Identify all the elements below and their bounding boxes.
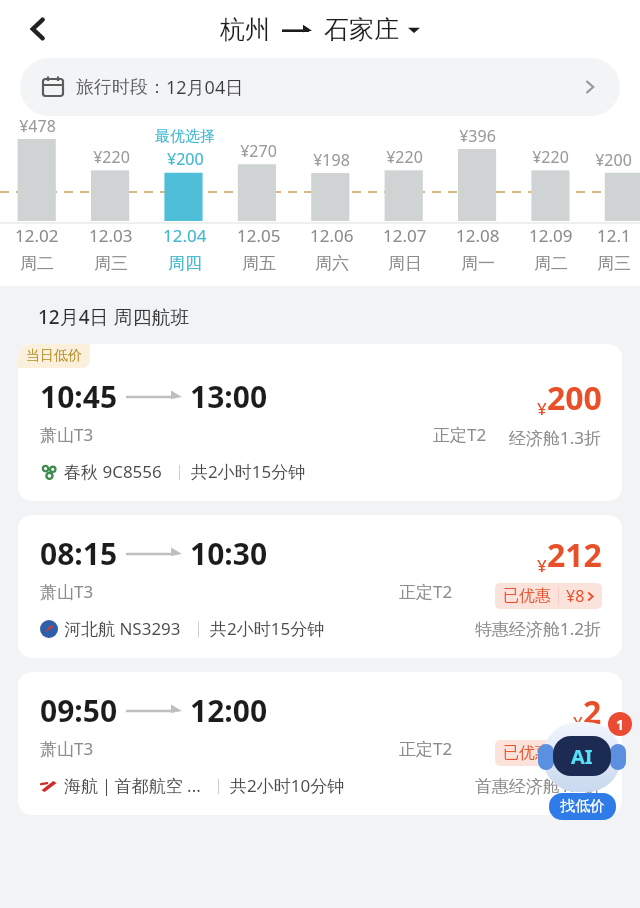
staticText: 经济舱1.3折	[509, 426, 602, 449]
staticText: 12.02	[15, 224, 59, 247]
staticText: 2	[583, 690, 602, 734]
staticText: 杭州	[220, 14, 270, 45]
staticText: ¥396	[459, 125, 496, 147]
staticText: ¥	[537, 397, 547, 420]
staticText: ¥	[537, 554, 547, 577]
staticText: 首惠经济舱1.7折	[475, 774, 602, 797]
staticText: 萧山T3	[40, 423, 94, 446]
staticText: 共2小时15分钟	[191, 460, 306, 483]
staticText: ¥478	[19, 115, 56, 137]
staticText: 萧山T3	[40, 737, 94, 760]
staticText: 200	[547, 376, 602, 420]
staticText: 特惠经济舱1.2折	[475, 617, 602, 640]
button[interactable]: 08:15	[18, 515, 622, 658]
staticText: 12.04	[163, 224, 207, 247]
staticText: 12.03	[89, 224, 133, 247]
staticText: 12月4日 周四航班	[38, 304, 190, 330]
staticText: 周三	[94, 253, 128, 274]
staticText: 正定T2	[399, 580, 453, 603]
staticText: 找低价	[560, 797, 605, 816]
staticText: ¥8	[566, 742, 585, 764]
button[interactable]: 12.05	[222, 224, 295, 274]
staticText: 正定T2	[399, 737, 453, 760]
staticText: ｜	[172, 462, 187, 481]
staticText: AI	[571, 743, 593, 770]
staticText: 12.06	[310, 224, 354, 247]
staticText: 12.05	[237, 224, 281, 247]
staticText: 12.09	[529, 224, 573, 247]
staticText: 12月04日	[166, 75, 244, 100]
staticText: 萧山T3	[40, 580, 94, 603]
staticText: 旅行时段：	[76, 76, 166, 99]
button[interactable]: 当日低价	[18, 344, 622, 501]
staticText: ¥198	[313, 149, 350, 171]
staticText: 最优选择	[155, 127, 215, 146]
staticText: 10:30	[190, 533, 268, 574]
button[interactable]: AI assistant, find lower price	[530, 712, 634, 824]
staticText: ¥220	[386, 146, 423, 168]
staticText: 212	[547, 533, 602, 577]
staticText: 已优惠	[503, 743, 551, 763]
staticText: 08:15	[40, 533, 118, 574]
staticText: 12.07	[383, 224, 427, 247]
button[interactable]: 12.08	[441, 224, 514, 274]
staticText: 海航｜首都航空 ...	[64, 774, 201, 797]
staticText: 周日	[388, 253, 422, 274]
button[interactable]: 12.1	[587, 224, 640, 274]
staticText: 周四	[168, 253, 202, 274]
staticText: ｜	[191, 619, 206, 638]
staticText: 已优惠	[503, 586, 551, 606]
staticText: 1	[616, 715, 625, 734]
button[interactable]: 杭州	[220, 14, 420, 45]
button[interactable]: 09:50	[18, 672, 622, 815]
staticText: 周一	[461, 253, 495, 274]
staticText: ¥200	[167, 148, 204, 170]
staticText: 春秋 9C8556	[64, 460, 162, 483]
staticText: 13:00	[190, 376, 268, 417]
staticText: ¥8	[566, 585, 585, 607]
staticText: 12.08	[456, 224, 500, 247]
staticText: 12.1	[597, 224, 631, 247]
staticText: 周二	[534, 253, 568, 274]
staticText: 10:45	[40, 376, 118, 417]
button[interactable]: 12.02	[0, 224, 74, 274]
staticText: ¥200	[595, 149, 632, 171]
button[interactable]: 旅行时段：	[20, 58, 620, 116]
staticText: 周二	[20, 253, 54, 274]
staticText: 共2小时10分钟	[230, 774, 345, 797]
button[interactable]: 12.06	[295, 224, 368, 274]
staticText: 周五	[242, 253, 276, 274]
staticText: ¥220	[532, 146, 569, 168]
button[interactable]: 12.03	[74, 224, 148, 274]
button[interactable]: 已优惠	[495, 583, 602, 609]
staticText: 当日低价	[26, 347, 82, 365]
button[interactable]: 12.09	[514, 224, 587, 274]
button[interactable]: Back	[14, 5, 62, 53]
staticText: ¥	[573, 711, 583, 734]
staticText: 周三	[597, 253, 631, 274]
staticText: 09:50	[40, 690, 118, 731]
staticText: 河北航 NS3293	[64, 617, 181, 640]
staticText: 石家庄	[324, 14, 399, 45]
staticText: ｜	[211, 776, 226, 795]
button[interactable]: 已优惠	[495, 740, 602, 766]
staticText: ¥270	[240, 140, 277, 162]
button[interactable]: 12.07	[368, 224, 441, 274]
staticText: ¥220	[93, 146, 130, 168]
staticText: 12:00	[190, 690, 268, 731]
staticText: 周六	[315, 253, 349, 274]
staticText: 正定T2	[433, 423, 487, 446]
staticText: 共2小时15分钟	[210, 617, 325, 640]
button[interactable]: 12.04	[148, 224, 222, 274]
